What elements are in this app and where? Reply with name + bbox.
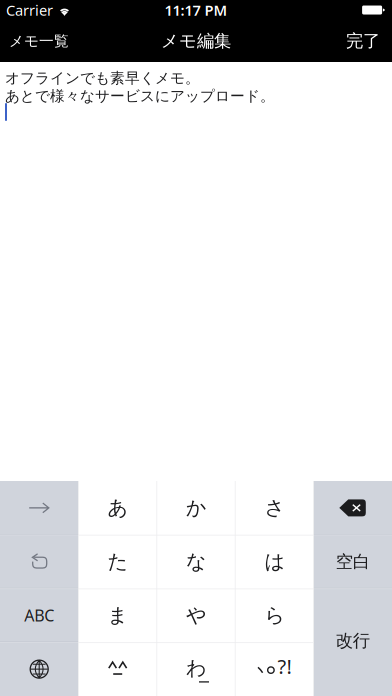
- button[interactable]: た: [78, 535, 157, 589]
- staticText: 11:17 PM: [164, 0, 227, 20]
- staticText: は: [264, 549, 284, 574]
- button[interactable]: な: [157, 535, 235, 589]
- button[interactable]: ?!: [235, 642, 314, 696]
- button[interactable]: Switch keyboard: [0, 642, 78, 696]
- button[interactable]: 完了: [334, 20, 392, 62]
- staticText: 空白: [336, 551, 370, 572]
- staticText: 完了: [346, 30, 380, 52]
- staticText: か: [186, 496, 206, 520]
- staticText: な: [186, 549, 206, 574]
- staticText: メモ編集: [161, 30, 231, 52]
- button[interactable]: は: [235, 535, 314, 589]
- button[interactable]: わ: [157, 642, 235, 696]
- staticText: あとで様々なサービスにアップロード。: [5, 87, 275, 105]
- staticText: ら: [264, 603, 284, 628]
- staticText: 改行: [336, 630, 370, 651]
- staticText: や: [186, 603, 206, 628]
- button[interactable]: さ: [235, 481, 314, 535]
- staticText: ?!: [278, 653, 292, 679]
- button[interactable]: [78, 642, 157, 696]
- button[interactable]: か: [157, 481, 235, 535]
- button[interactable]: Delete: [314, 481, 392, 535]
- staticText: わ: [186, 656, 206, 680]
- button[interactable]: Undo: [0, 535, 78, 589]
- staticText: あ: [108, 496, 128, 520]
- staticText: ABC: [24, 605, 54, 626]
- staticText: さ: [264, 496, 284, 520]
- button[interactable]: 空白: [314, 535, 392, 589]
- button[interactable]: あ: [78, 481, 157, 535]
- staticText: ま: [108, 603, 128, 628]
- button[interactable]: メモ一覧: [0, 20, 78, 62]
- button[interactable]: や: [157, 588, 235, 642]
- button[interactable]: Next candidate: [0, 481, 78, 535]
- staticText: た: [108, 549, 128, 574]
- button[interactable]: ら: [235, 588, 314, 642]
- staticText: Carrier: [6, 0, 53, 20]
- button[interactable]: ま: [78, 588, 157, 642]
- staticText: オフラインでも素早くメモ。: [5, 69, 200, 87]
- staticText: メモ一覧: [9, 32, 69, 50]
- button[interactable]: ABC: [0, 588, 78, 642]
- button[interactable]: 改行: [314, 588, 392, 696]
